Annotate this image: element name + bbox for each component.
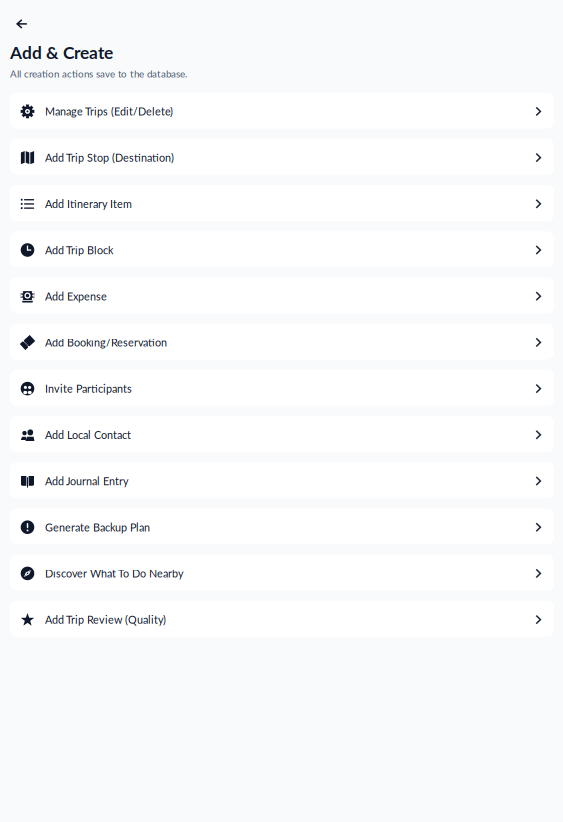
button[interactable]: Add Local Contact — [10, 416, 554, 452]
button[interactable]: Add Expense — [10, 277, 554, 313]
button[interactable]: Manage Trips (Edit/Delete) — [10, 93, 554, 129]
button[interactable]: Generate Backup Plan — [10, 508, 554, 544]
staticText: Manage Trips (Edit/Delete) — [45, 105, 173, 118]
button[interactable]: Add Trip Block — [10, 231, 554, 267]
staticText: Add Expense — [45, 290, 107, 303]
button[interactable]: Invite Participants — [10, 370, 554, 406]
staticText: All creation actions save to the databas… — [10, 68, 187, 80]
staticText: Add Trip Block — [45, 243, 113, 256]
button[interactable]: Add Itinerary Item — [10, 185, 554, 221]
staticText: Add Journal Entry — [45, 474, 129, 487]
staticText: Add Local Contact — [45, 428, 131, 441]
staticText: Add Itinerary Item — [45, 197, 132, 210]
staticText: Add Booking/Reservation — [45, 336, 167, 349]
staticText: Discover What To Do Nearby — [45, 567, 184, 580]
button[interactable]: Discover What To Do Nearby — [10, 555, 554, 591]
button[interactable]: Back — [9, 11, 35, 37]
staticText: Invite Participants — [45, 382, 132, 395]
button[interactable]: Add Trip Stop (Destination) — [10, 139, 554, 175]
button[interactable]: Add Trip Review (Quality) — [10, 601, 554, 637]
staticText: Add & Create — [10, 42, 113, 63]
staticText: Generate Backup Plan — [45, 521, 150, 534]
staticText: Add Trip Review (Quality) — [45, 613, 166, 626]
button[interactable]: Add Journal Entry — [10, 462, 554, 498]
staticText: Add Trip Stop (Destination) — [45, 151, 174, 164]
button[interactable]: Add Booking/Reservation — [10, 324, 554, 360]
